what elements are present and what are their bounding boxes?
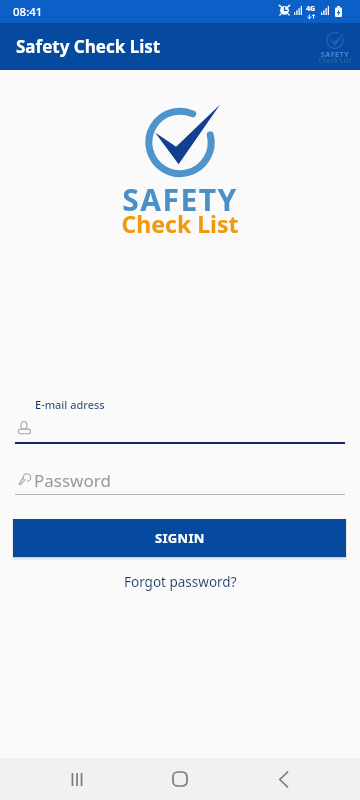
button[interactable]: SIGNIN <box>13 519 346 557</box>
staticText: Password <box>34 469 111 492</box>
button[interactable]: Back <box>257 758 309 800</box>
staticText: SIGNIN <box>155 529 205 547</box>
staticText: Check List <box>0 208 360 239</box>
staticText: SAFETY <box>318 50 352 60</box>
staticText: SAFETY <box>0 179 360 220</box>
button[interactable]: Recent apps <box>51 758 103 800</box>
button[interactable]: Safety Check List logo <box>315 32 355 72</box>
staticText: Check List <box>318 56 352 65</box>
button[interactable]: Forgot password? <box>116 571 245 593</box>
staticText: Safety Check List <box>16 35 161 58</box>
button[interactable]: Home <box>154 758 206 800</box>
staticText: E-mail adress <box>35 397 105 412</box>
staticText: 4G <box>306 4 316 14</box>
staticText: 08:41 <box>13 4 43 20</box>
